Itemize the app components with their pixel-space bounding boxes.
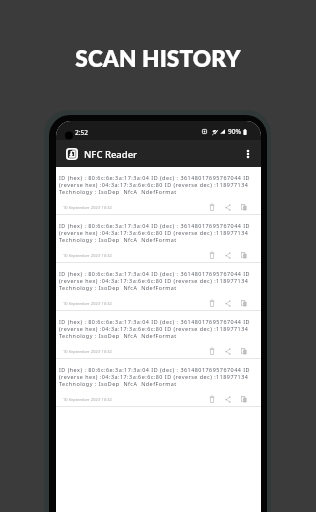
staticText: (reverse hex) :04:3a:17:3a:6e:6c:80 ID (…: [59, 277, 249, 284]
staticText: Technology : IsoDep NfcA NdefFormat: [59, 380, 177, 387]
button[interactable]: Share: [222, 393, 234, 405]
staticText: 10 September 2023 10:32: [63, 205, 112, 210]
button[interactable]: ID (hex) : 80:6c:6e:3a:17:3a:04 ID (dec)…: [56, 263, 261, 311]
button[interactable]: Delete: [206, 249, 218, 261]
button[interactable]: Delete: [206, 297, 218, 309]
staticText: 2:52: [75, 128, 88, 137]
staticText: (reverse hex) :04:3a:17:3a:6e:6c:80 ID (…: [59, 325, 249, 332]
staticText: (reverse hex) :04:3a:17:3a:6e:6c:80 ID (…: [59, 373, 249, 380]
button[interactable]: ID (hex) : 80:6c:6e:3a:17:3a:04 ID (dec)…: [56, 359, 261, 407]
button[interactable]: Share: [222, 249, 234, 261]
button[interactable]: Share: [222, 345, 234, 357]
staticText: ID (hex) : 80:6c:6e:3a:17:3a:04 ID (dec)…: [59, 366, 251, 373]
staticText: Technology : IsoDep NfcA NdefFormat: [59, 188, 177, 195]
staticText: 10 September 2023 10:32: [63, 301, 112, 306]
button[interactable]: Copy: [238, 249, 250, 261]
staticText: Technology : IsoDep NfcA NdefFormat: [59, 236, 177, 243]
button[interactable]: Copy: [238, 297, 250, 309]
staticText: SCAN HISTORY: [0, 45, 316, 72]
button[interactable]: Copy: [238, 393, 250, 405]
button[interactable]: More options: [237, 143, 259, 165]
staticText: Technology : IsoDep NfcA NdefFormat: [59, 332, 177, 339]
staticText: Technology : IsoDep NfcA NdefFormat: [59, 284, 177, 291]
button[interactable]: Share: [222, 201, 234, 213]
staticText: NFC Reader: [84, 148, 138, 161]
staticText: ID (hex) : 80:6c:6e:3a:17:3a:04 ID (dec)…: [59, 222, 251, 229]
button[interactable]: Delete: [206, 201, 218, 213]
staticText: 90%: [228, 127, 242, 136]
button[interactable]: Delete: [206, 345, 218, 357]
button[interactable]: Copy: [238, 345, 250, 357]
button[interactable]: ID (hex) : 80:6c:6e:3a:17:3a:04 ID (dec)…: [56, 167, 261, 215]
staticText: ID (hex) : 80:6c:6e:3a:17:3a:04 ID (dec)…: [59, 318, 251, 325]
button[interactable]: ID (hex) : 80:6c:6e:3a:17:3a:04 ID (dec)…: [56, 215, 261, 263]
staticText: ID (hex) : 80:6c:6e:3a:17:3a:04 ID (dec)…: [59, 270, 251, 277]
button[interactable]: Share: [222, 297, 234, 309]
staticText: ID (hex) : 80:6c:6e:3a:17:3a:04 ID (dec)…: [59, 174, 251, 181]
button[interactable]: ID (hex) : 80:6c:6e:3a:17:3a:04 ID (dec)…: [56, 311, 261, 359]
staticText: 10 September 2023 10:32: [63, 397, 112, 402]
button[interactable]: Delete: [206, 393, 218, 405]
staticText: 10 September 2023 10:32: [63, 253, 112, 258]
staticText: 10 September 2023 10:32: [63, 349, 112, 354]
staticText: (reverse hex) :04:3a:17:3a:6e:6c:80 ID (…: [59, 181, 249, 188]
button[interactable]: Copy: [238, 201, 250, 213]
button[interactable]: NFC: [60, 142, 84, 166]
staticText: (reverse hex) :04:3a:17:3a:6e:6c:80 ID (…: [59, 229, 249, 236]
